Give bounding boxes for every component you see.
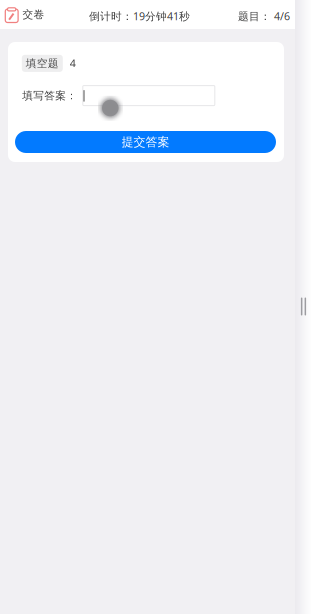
- button[interactable]: 填写答案: [83, 86, 215, 106]
- staticText: 题目： 4/6: [238, 9, 290, 23]
- staticText: 倒计时：19分钟41秒: [89, 9, 190, 23]
- staticText: 交卷: [22, 8, 44, 21]
- staticText: 提交答案: [121, 135, 169, 149]
- button[interactable]: 提交答案: [15, 131, 276, 153]
- staticText: 填写答案：: [22, 89, 77, 102]
- staticText: 4: [70, 56, 76, 70]
- button[interactable]: 交卷: [0, 0, 52, 29]
- staticText: 填空题: [26, 57, 59, 70]
- button[interactable]: 展开题目列表: [295, 0, 311, 614]
